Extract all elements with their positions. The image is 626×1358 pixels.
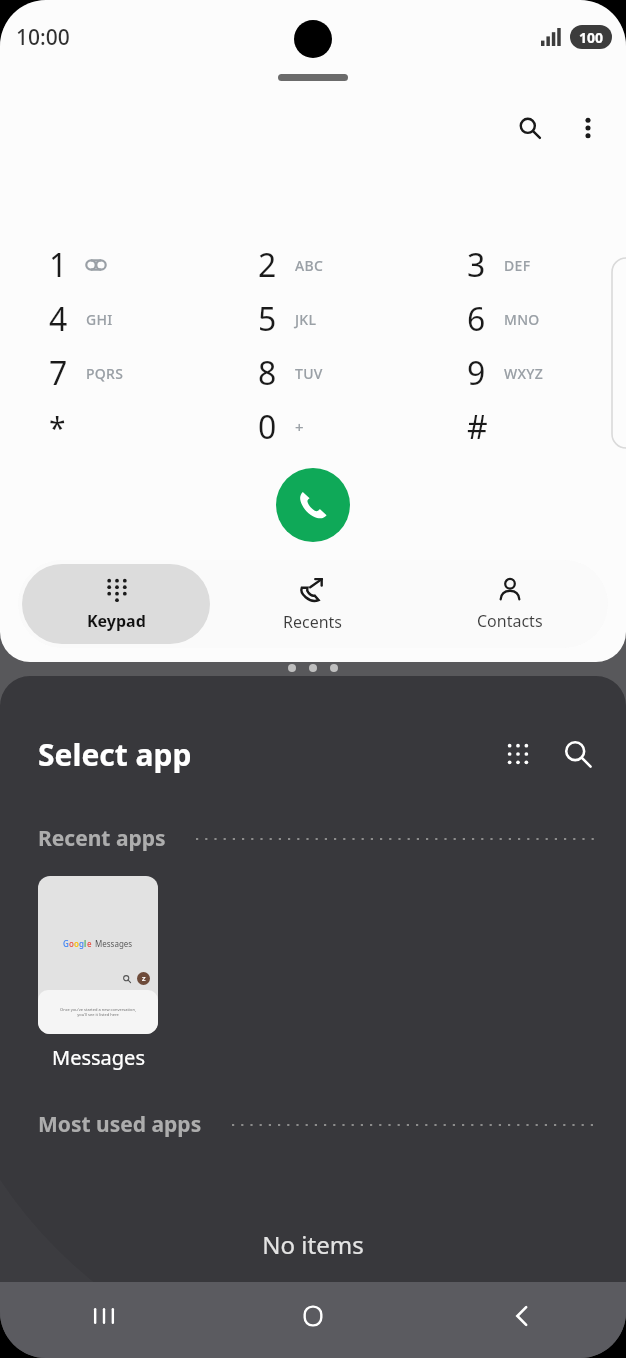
- staticText: 9: [467, 351, 486, 395]
- button[interactable]: 1: [0, 238, 208, 292]
- staticText: Z: [142, 975, 146, 983]
- staticText: 5: [258, 297, 277, 341]
- button[interactable]: 3: [417, 238, 626, 292]
- button[interactable]: Contacts: [415, 564, 604, 644]
- staticText: PQRS: [86, 364, 124, 383]
- staticText: Most used apps: [38, 1110, 202, 1139]
- staticText: g: [79, 938, 84, 949]
- button[interactable]: *: [0, 400, 208, 454]
- staticText: Contacts: [477, 610, 543, 632]
- button[interactable]: Keypad: [22, 564, 210, 644]
- staticText: #: [467, 405, 488, 449]
- button[interactable]: Search: [504, 102, 556, 154]
- staticText: 0: [258, 405, 277, 449]
- staticText: Recent apps: [38, 824, 166, 853]
- staticText: you'll see it listed here: [77, 1012, 119, 1017]
- button[interactable]: 6: [417, 292, 626, 346]
- button[interactable]: 0: [208, 400, 417, 454]
- button[interactable]: 4: [0, 292, 208, 346]
- staticText: ABC: [295, 256, 324, 275]
- staticText: Messages: [52, 1044, 145, 1071]
- staticText: *: [49, 407, 66, 448]
- staticText: TUV: [295, 364, 323, 383]
- staticText: G: [63, 938, 69, 949]
- staticText: WXYZ: [504, 364, 544, 383]
- button[interactable]: #: [417, 400, 626, 454]
- staticText: 100: [579, 28, 604, 47]
- staticText: 1: [49, 243, 68, 287]
- button[interactable]: More options: [562, 102, 614, 154]
- staticText: No items: [0, 1228, 626, 1261]
- staticText: 7: [49, 351, 68, 395]
- staticText: Messages: [95, 938, 133, 949]
- button[interactable]: Back: [417, 1282, 626, 1350]
- button[interactable]: Call: [276, 468, 350, 542]
- button[interactable]: Search apps: [552, 728, 604, 780]
- staticText: 6: [467, 297, 486, 341]
- button[interactable]: 7: [0, 346, 208, 400]
- staticText: GHI: [86, 310, 113, 329]
- button[interactable]: 5: [208, 292, 417, 346]
- staticText: +: [295, 417, 304, 437]
- button[interactable]: Recent apps: [0, 1282, 208, 1350]
- staticText: Once you've started a new conversation,: [60, 1007, 136, 1012]
- staticText: 4: [49, 297, 68, 341]
- staticText: 8: [258, 351, 277, 395]
- button[interactable]: 2: [208, 238, 417, 292]
- staticText: l: [84, 938, 87, 949]
- staticText: Recents: [283, 611, 343, 633]
- staticText: JKL: [295, 310, 317, 329]
- staticText: 3: [467, 243, 486, 287]
- button[interactable]: 8: [208, 346, 417, 400]
- staticText: Keypad: [87, 610, 146, 632]
- staticText: e: [87, 938, 92, 949]
- staticText: o: [69, 938, 74, 949]
- button[interactable]: Home: [208, 1282, 417, 1350]
- staticText: Select app: [38, 734, 492, 775]
- button[interactable]: Recents: [218, 564, 407, 644]
- staticText: 10:00: [16, 23, 70, 52]
- staticText: o: [74, 938, 79, 949]
- staticText: DEF: [504, 256, 531, 275]
- button[interactable]: G: [38, 876, 158, 1071]
- button[interactable]: 9: [417, 346, 626, 400]
- button[interactable]: All apps: [492, 728, 544, 780]
- staticText: 2: [258, 243, 277, 287]
- staticText: MNO: [504, 310, 540, 329]
